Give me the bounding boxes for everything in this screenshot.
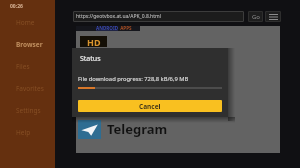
button[interactable]: Settings [0, 99, 55, 121]
staticText: 00:26 [10, 3, 23, 10]
staticText: Home [16, 18, 35, 27]
staticText: Go [252, 13, 260, 21]
staticText: Settings [16, 106, 41, 115]
staticText: Favorites [16, 84, 44, 93]
button[interactable]: Home [0, 11, 55, 33]
staticText: Status [80, 54, 101, 64]
button[interactable]: Help [0, 121, 55, 143]
button[interactable]: Browser [0, 33, 55, 55]
button[interactable]: Menu [265, 11, 281, 22]
staticText: Files [16, 62, 30, 71]
staticText: ANDROID [96, 25, 119, 31]
button[interactable]: Favorites [0, 77, 55, 99]
staticText: https://geotvbox.at.ua/APK_0.8.html [76, 13, 161, 20]
button[interactable]: Go [248, 11, 263, 22]
staticText: Telegram [107, 120, 168, 138]
button[interactable]: Cancel [78, 100, 222, 112]
staticText: APPS [119, 25, 132, 31]
staticText: HD [87, 36, 101, 47]
staticText: Cancel [139, 102, 161, 111]
staticText: Help [16, 128, 31, 137]
staticText: Browser [16, 40, 43, 49]
button[interactable]: https://geotvbox.at.ua/APK_0.8.html [73, 11, 244, 22]
staticText: File download progress: 728,8 kB/6,9 MB [78, 75, 189, 83]
